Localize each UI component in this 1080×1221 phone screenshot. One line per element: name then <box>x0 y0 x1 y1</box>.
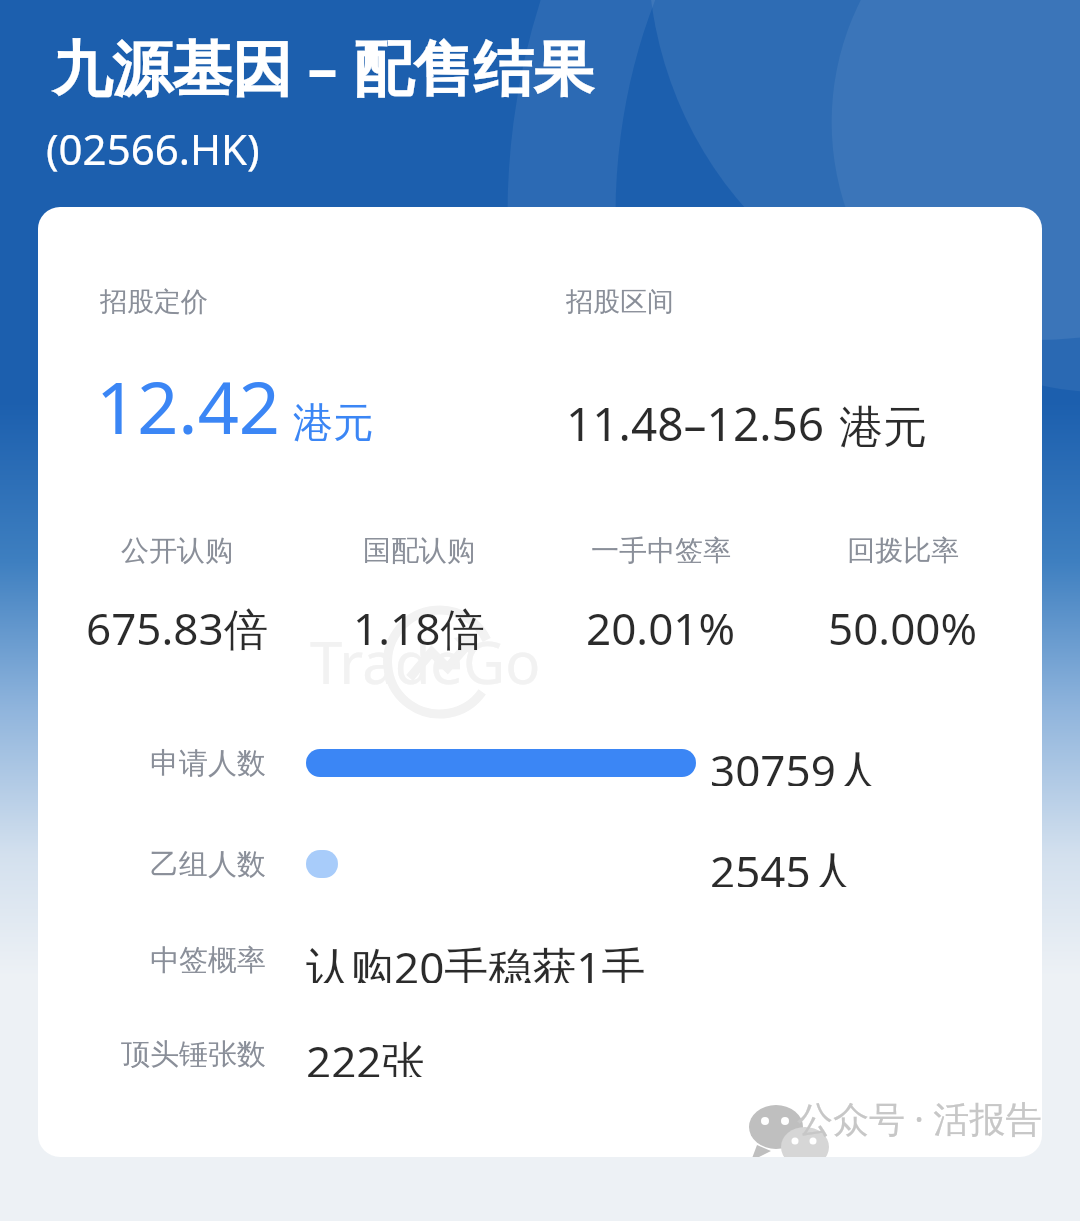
staticText: 国配认购 <box>363 533 475 568</box>
button[interactable]: 申请人数 <box>38 740 1042 786</box>
staticText: 九源基因 – 配售结果 <box>52 26 594 108</box>
staticText: 申请人数 <box>150 745 266 782</box>
staticText: 乙组人数 <box>150 846 266 883</box>
staticText: 2545人 <box>710 841 855 887</box>
staticText: 12.42 <box>96 357 281 455</box>
staticText: 顶头锤张数 <box>121 1036 266 1073</box>
button[interactable]: 顶头锤张数 <box>38 1031 1042 1077</box>
staticText: 222张 <box>306 1031 426 1077</box>
staticText: 中签概率 <box>150 942 266 979</box>
button[interactable]: 中签概率 <box>38 937 1042 983</box>
staticText: 招股区间 <box>566 285 674 319</box>
button[interactable]: TradeGo <box>38 207 1042 1157</box>
staticText: 港元 <box>293 397 373 447</box>
staticText: TradeGo <box>310 622 541 701</box>
button[interactable]: WeChat <box>747 1094 1042 1143</box>
staticText: 30759人 <box>710 740 880 786</box>
staticText: 回拨比率 <box>847 533 959 568</box>
staticText: 675.83倍 <box>86 598 268 658</box>
staticText: 20.01% <box>586 598 736 658</box>
staticText: 认购20手稳获1手 <box>306 937 646 983</box>
staticText: 公众号 · 活报告 <box>797 1094 1042 1143</box>
staticText: 港元 <box>839 400 927 455</box>
staticText: 50.00% <box>828 598 978 658</box>
staticText: 11.48–12.56 <box>566 392 825 455</box>
staticText: (02566.HK) <box>46 120 260 177</box>
staticText: 招股定价 <box>100 285 208 319</box>
staticText: 一手中签率 <box>591 533 731 568</box>
other: WeChat <box>747 1097 791 1141</box>
staticText: 公开认购 <box>121 533 233 568</box>
button[interactable]: 乙组人数 <box>38 841 1042 887</box>
staticText: 1.18倍 <box>353 598 485 658</box>
